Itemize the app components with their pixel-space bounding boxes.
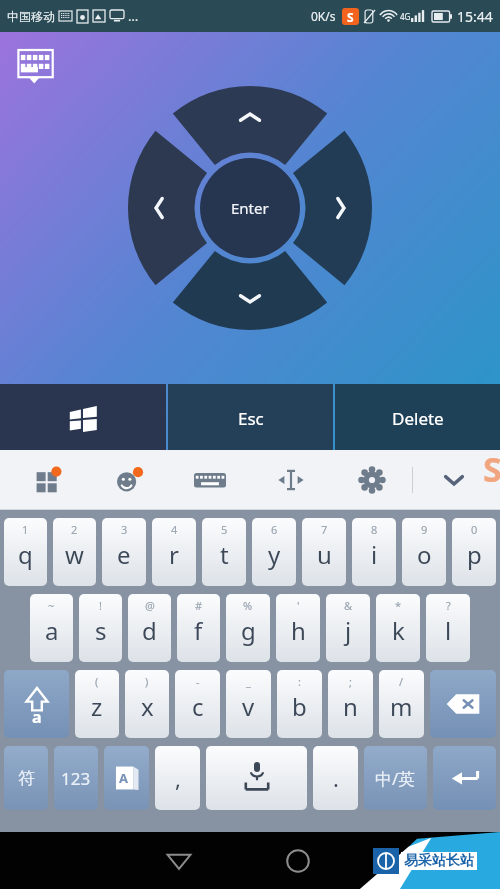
button[interactable]: Enter: [433, 746, 496, 810]
button[interactable]: -: [175, 670, 220, 738]
button[interactable]: Dictionary: [104, 746, 149, 810]
button[interactable]: 中/英: [364, 746, 427, 810]
button[interactable]: Settings: [331, 450, 412, 510]
staticText: S: [483, 446, 500, 492]
staticText: .: [333, 763, 339, 793]
staticText: o: [417, 538, 432, 571]
staticText: 4G: [400, 11, 411, 22]
staticText: w: [65, 538, 84, 571]
staticText: 中国移动: [7, 9, 55, 24]
staticText: @: [145, 598, 155, 613]
button[interactable]: ): [125, 670, 169, 738]
button[interactable]: #: [177, 594, 220, 662]
staticText: -: [196, 674, 200, 689]
other: Keyboard layout: [194, 469, 226, 491]
button[interactable]: _: [226, 670, 271, 738]
button[interactable]: 123: [54, 746, 98, 810]
staticText: t: [220, 538, 229, 571]
staticText: i: [371, 538, 378, 571]
button[interactable]: ;: [328, 670, 373, 738]
staticText: 易采站长站: [404, 852, 474, 870]
staticText: q: [18, 538, 33, 571]
staticText: y: [268, 538, 281, 571]
button[interactable]: Tools: [8, 450, 88, 510]
button[interactable]: 2: [53, 518, 96, 586]
button[interactable]: 符: [4, 746, 48, 810]
other: Windows key: [68, 403, 98, 433]
staticText: f: [194, 614, 203, 647]
button[interactable]: Backspace: [430, 670, 496, 738]
staticText: s: [95, 614, 107, 647]
other: Move cursor: [276, 468, 306, 492]
staticText: ~: [48, 598, 55, 613]
button[interactable]: ?: [426, 594, 470, 662]
staticText: j: [345, 614, 352, 647]
button[interactable]: Home: [238, 832, 357, 889]
staticText: v: [242, 690, 255, 723]
button[interactable]: &: [326, 594, 370, 662]
button[interactable]: Delete: [335, 384, 500, 452]
button[interactable]: Shift: [4, 670, 69, 738]
staticText: x: [141, 690, 154, 723]
staticText: 15:44: [457, 7, 493, 26]
button[interactable]: 4: [152, 518, 196, 586]
button[interactable]: 9: [402, 518, 446, 586]
button[interactable]: 3: [102, 518, 146, 586]
button[interactable]: ~: [30, 594, 73, 662]
staticText: !: [99, 598, 102, 613]
button[interactable]: (: [75, 670, 119, 738]
other: Tools: [33, 465, 63, 495]
staticText: Enter: [231, 198, 269, 218]
button[interactable]: 8: [352, 518, 396, 586]
staticText: 9: [421, 522, 428, 537]
button[interactable]: Emoji: [88, 450, 169, 510]
button[interactable]: %: [226, 594, 270, 662]
button[interactable]: 1: [4, 518, 47, 586]
button[interactable]: 7: [302, 518, 346, 586]
other: Hide keyboard: [440, 466, 468, 494]
staticText: %: [243, 598, 253, 613]
button[interactable]: 0: [452, 518, 496, 586]
staticText: 123: [61, 767, 91, 790]
button[interactable]: *: [376, 594, 420, 662]
other: Settings: [359, 467, 385, 493]
staticText: ?: [446, 598, 451, 613]
staticText: r: [169, 538, 179, 571]
button[interactable]: Enter: [200, 158, 300, 258]
staticText: 3: [121, 522, 128, 537]
staticText: 0K/s: [311, 8, 336, 24]
button[interactable]: :: [277, 670, 322, 738]
button[interactable]: .: [313, 746, 358, 810]
button[interactable]: Space and voice input: [206, 746, 307, 810]
staticText: n: [343, 690, 358, 723]
button[interactable]: Back: [119, 832, 238, 889]
staticText: 0: [471, 522, 478, 537]
button[interactable]: Hide keyboard: [413, 450, 494, 510]
button[interactable]: Keyboard layout: [169, 450, 250, 510]
button[interactable]: ': [276, 594, 320, 662]
staticText: 8: [371, 522, 378, 537]
button[interactable]: Keyboard: [14, 46, 58, 86]
staticText: 4: [171, 522, 178, 537]
staticText: 7: [321, 522, 328, 537]
button[interactable]: Move cursor: [250, 450, 331, 510]
staticText: Esc: [238, 407, 264, 430]
button[interactable]: ,: [155, 746, 200, 810]
staticText: S: [347, 9, 354, 25]
other: Emoji: [114, 465, 144, 495]
button[interactable]: /: [379, 670, 424, 738]
button[interactable]: 6: [252, 518, 296, 586]
button[interactable]: !: [79, 594, 122, 662]
staticText: k: [392, 614, 405, 647]
button[interactable]: Windows key: [0, 384, 166, 452]
staticText: z: [91, 690, 103, 723]
staticText: ': [297, 598, 300, 613]
staticText: l: [445, 614, 452, 647]
staticText: m: [390, 690, 413, 723]
button[interactable]: @: [128, 594, 171, 662]
staticText: h: [291, 614, 306, 647]
staticText: u: [317, 538, 332, 571]
button[interactable]: 5: [202, 518, 246, 586]
staticText: 5: [221, 522, 228, 537]
button[interactable]: Esc: [168, 384, 333, 452]
